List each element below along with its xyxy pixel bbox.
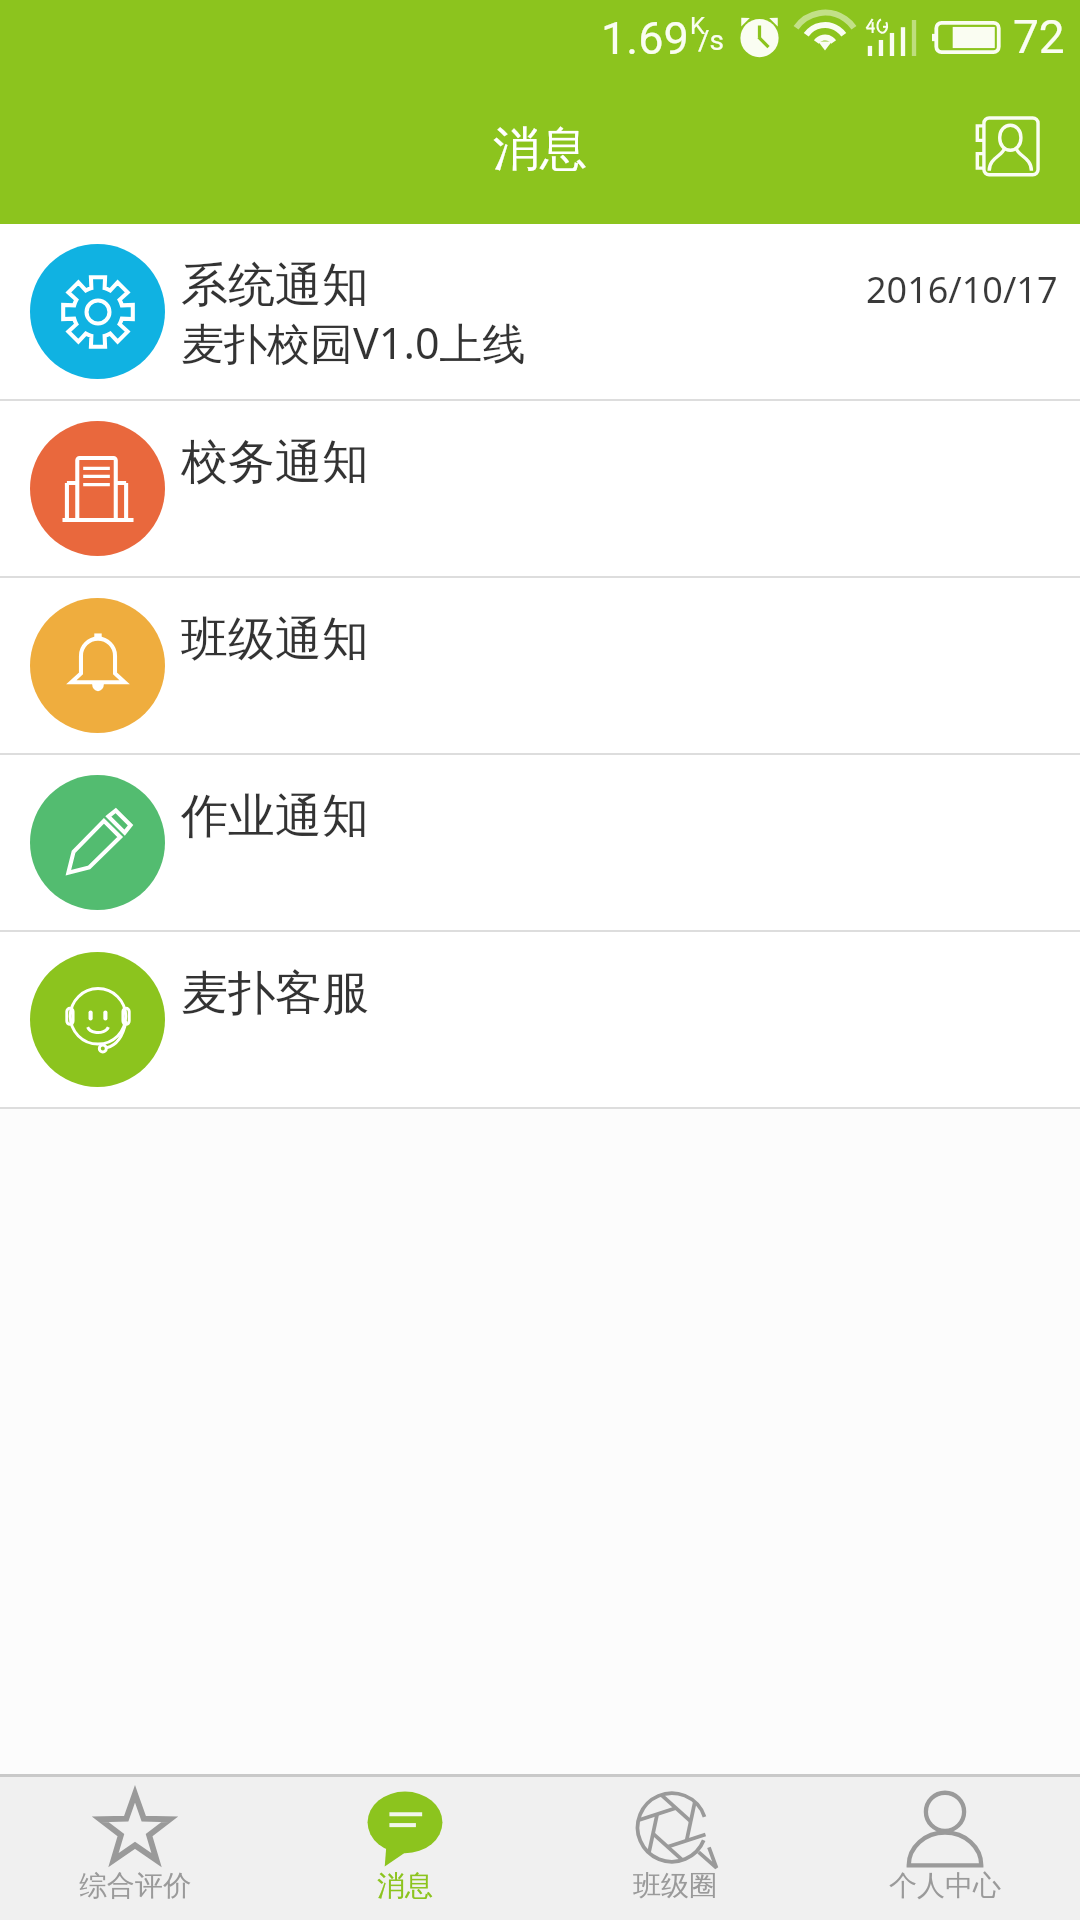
button[interactable]: 个人中心 — [810, 1777, 1080, 1855]
staticText: 2016/10/17 — [866, 265, 1058, 314]
button[interactable]: 班级通知 — [0, 578, 1080, 755]
staticText: 班级圈 — [633, 1868, 717, 1903]
staticText: 个人中心 — [889, 1868, 1001, 1903]
staticText: K — [690, 12, 706, 40]
staticText: 消息 — [493, 120, 587, 179]
staticText: 麦扑校园V1.0上线 — [181, 313, 526, 372]
staticText: 系统通知 — [181, 256, 369, 315]
staticText: 72 — [1013, 10, 1065, 64]
button[interactable]: 作业通知 — [0, 755, 1080, 932]
staticText: 1.69 — [601, 12, 689, 65]
button[interactable]: Contacts — [950, 88, 1067, 205]
staticText: 消息 — [377, 1868, 433, 1903]
staticText: /s — [698, 24, 725, 57]
staticText: 校务通知 — [181, 433, 369, 492]
staticText: 麦扑客服 — [181, 964, 369, 1023]
staticText: 班级通知 — [181, 610, 369, 669]
staticText: 综合评价 — [79, 1868, 191, 1903]
button[interactable]: 校务通知 — [0, 401, 1080, 578]
button[interactable]: 麦扑客服 — [0, 932, 1080, 1109]
button[interactable]: 班级圈 — [540, 1777, 810, 1855]
button[interactable]: 系统通知 — [0, 224, 1080, 401]
staticText: 作业通知 — [181, 787, 369, 846]
button[interactable]: 消息 — [270, 1777, 540, 1855]
button[interactable]: 综合评价 — [0, 1777, 270, 1855]
